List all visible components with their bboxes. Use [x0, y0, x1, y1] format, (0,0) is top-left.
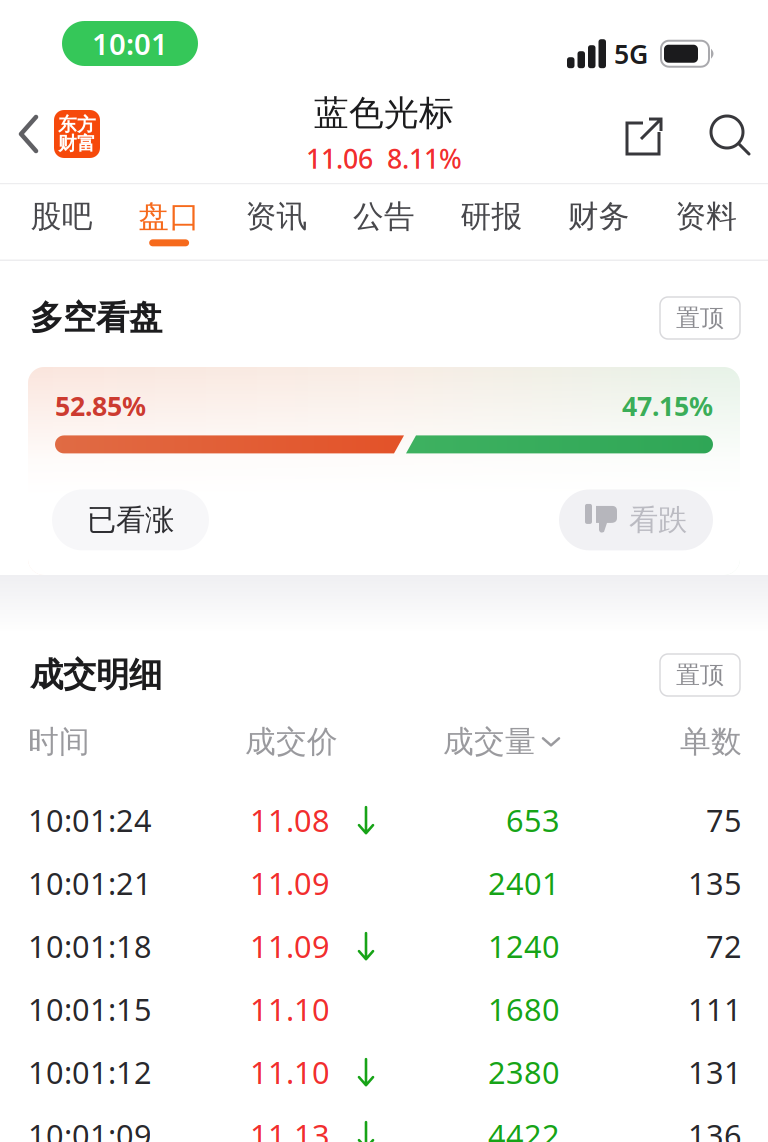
button[interactable]: 研报	[438, 184, 545, 259]
staticText: 盘口	[138, 198, 200, 235]
staticText: 11.09	[250, 926, 330, 966]
staticText: 东方	[58, 113, 96, 136]
staticText: 11.10	[250, 1052, 330, 1092]
staticText: 10:01:15	[28, 989, 152, 1029]
button[interactable]: 搜索	[665, 113, 752, 155]
staticText: 72	[706, 926, 742, 966]
button[interactable]: 返回通话	[62, 21, 198, 66]
staticText: 蓝色光标	[314, 92, 454, 135]
staticText: 2401	[488, 863, 560, 903]
staticText: 单数	[680, 723, 742, 761]
staticText: 10:01:09	[28, 1115, 152, 1142]
button[interactable]: 看跌	[559, 489, 713, 550]
staticText: 111	[688, 989, 742, 1029]
button[interactable]: 返回	[0, 114, 40, 154]
staticText: 资料	[675, 198, 737, 235]
staticText: 75	[706, 800, 742, 840]
button[interactable]: 按成交量排序	[377, 723, 560, 761]
staticText: 10:01	[92, 24, 168, 63]
staticText: 2380	[488, 1052, 560, 1092]
staticText: 11.10	[250, 989, 330, 1029]
button[interactable]: 资料	[653, 184, 760, 259]
staticText: 置顶	[676, 660, 724, 690]
staticText: 看跌	[629, 502, 687, 538]
staticText: 135	[688, 863, 742, 903]
staticText: 11.13	[250, 1115, 330, 1142]
staticText: 成交价	[245, 723, 338, 761]
staticText: 136	[688, 1115, 742, 1142]
staticText: 研报	[460, 198, 522, 235]
button[interactable]: 公告	[330, 184, 438, 259]
staticText: 11.06 8.11%	[306, 141, 462, 176]
staticText: 5G	[614, 36, 648, 71]
staticText: 47.15%	[622, 388, 713, 423]
staticText: 10:01:12	[28, 1052, 152, 1092]
staticText: 10:01:18	[28, 926, 152, 966]
staticText: 股吧	[31, 198, 93, 235]
staticText: 财务	[568, 198, 630, 235]
staticText: 1680	[488, 989, 560, 1029]
staticText: 财富	[58, 132, 96, 155]
staticText: 已看涨	[87, 502, 174, 538]
button[interactable]: 分享	[623, 113, 665, 155]
button[interactable]: 东方财富	[40, 110, 100, 158]
staticText: 时间	[28, 723, 90, 761]
staticText: 10:01:21	[28, 863, 152, 903]
button[interactable]: 资讯	[223, 184, 330, 259]
staticText: 4422	[488, 1115, 560, 1142]
staticText: 成交量	[443, 723, 536, 761]
staticText: 1240	[488, 926, 560, 966]
staticText: 置顶	[676, 303, 724, 333]
staticText: 公告	[353, 198, 415, 235]
staticText: 11.09	[250, 863, 330, 903]
button[interactable]: 股吧	[8, 184, 115, 259]
staticText: 多空看盘	[30, 297, 162, 338]
staticText: 资讯	[246, 198, 308, 235]
button[interactable]: 已看涨	[52, 489, 209, 550]
button[interactable]: 置顶	[660, 654, 740, 696]
staticText: 10:01:24	[28, 800, 152, 840]
button[interactable]: 盘口	[115, 184, 223, 259]
staticText: 11.08	[250, 800, 330, 840]
staticText: 52.85%	[55, 388, 146, 423]
staticText: 成交明细	[30, 654, 162, 695]
button[interactable]: 财务	[545, 184, 652, 259]
staticText: 131	[688, 1052, 742, 1092]
staticText: 653	[506, 800, 560, 840]
button[interactable]: 置顶	[660, 297, 740, 339]
